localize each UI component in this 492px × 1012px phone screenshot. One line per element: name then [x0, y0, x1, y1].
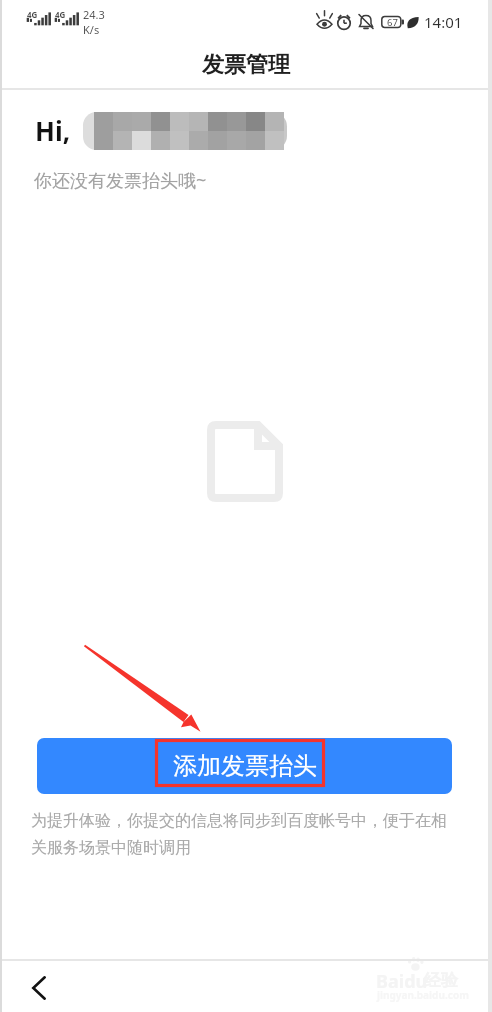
staticText: Hi,: [35, 113, 71, 148]
staticText: 4G: [55, 9, 66, 20]
staticText: 为提升体验，你提交的信息将同步到百度帐号中，便于在相关服务场景中随时调用: [31, 811, 452, 858]
staticText: 经验: [424, 970, 458, 991]
button[interactable]: 添加发票抬头: [37, 738, 452, 794]
staticText: 4G: [27, 9, 38, 20]
staticText: K/s: [83, 22, 100, 37]
staticText: 你还没有发票抬头哦~: [34, 168, 207, 193]
staticText: jingyan.baidu.com: [377, 988, 469, 1002]
staticText: 发票管理: [202, 51, 290, 79]
staticText: 67: [387, 16, 398, 29]
button[interactable]: Back: [12, 964, 66, 1012]
button[interactable]: 发票管理: [0, 42, 492, 87]
staticText: Baidu: [376, 969, 428, 994]
staticText: 24.3: [83, 7, 105, 22]
staticText: 14:01: [424, 12, 463, 32]
staticText: 添加发票抬头: [173, 751, 317, 781]
